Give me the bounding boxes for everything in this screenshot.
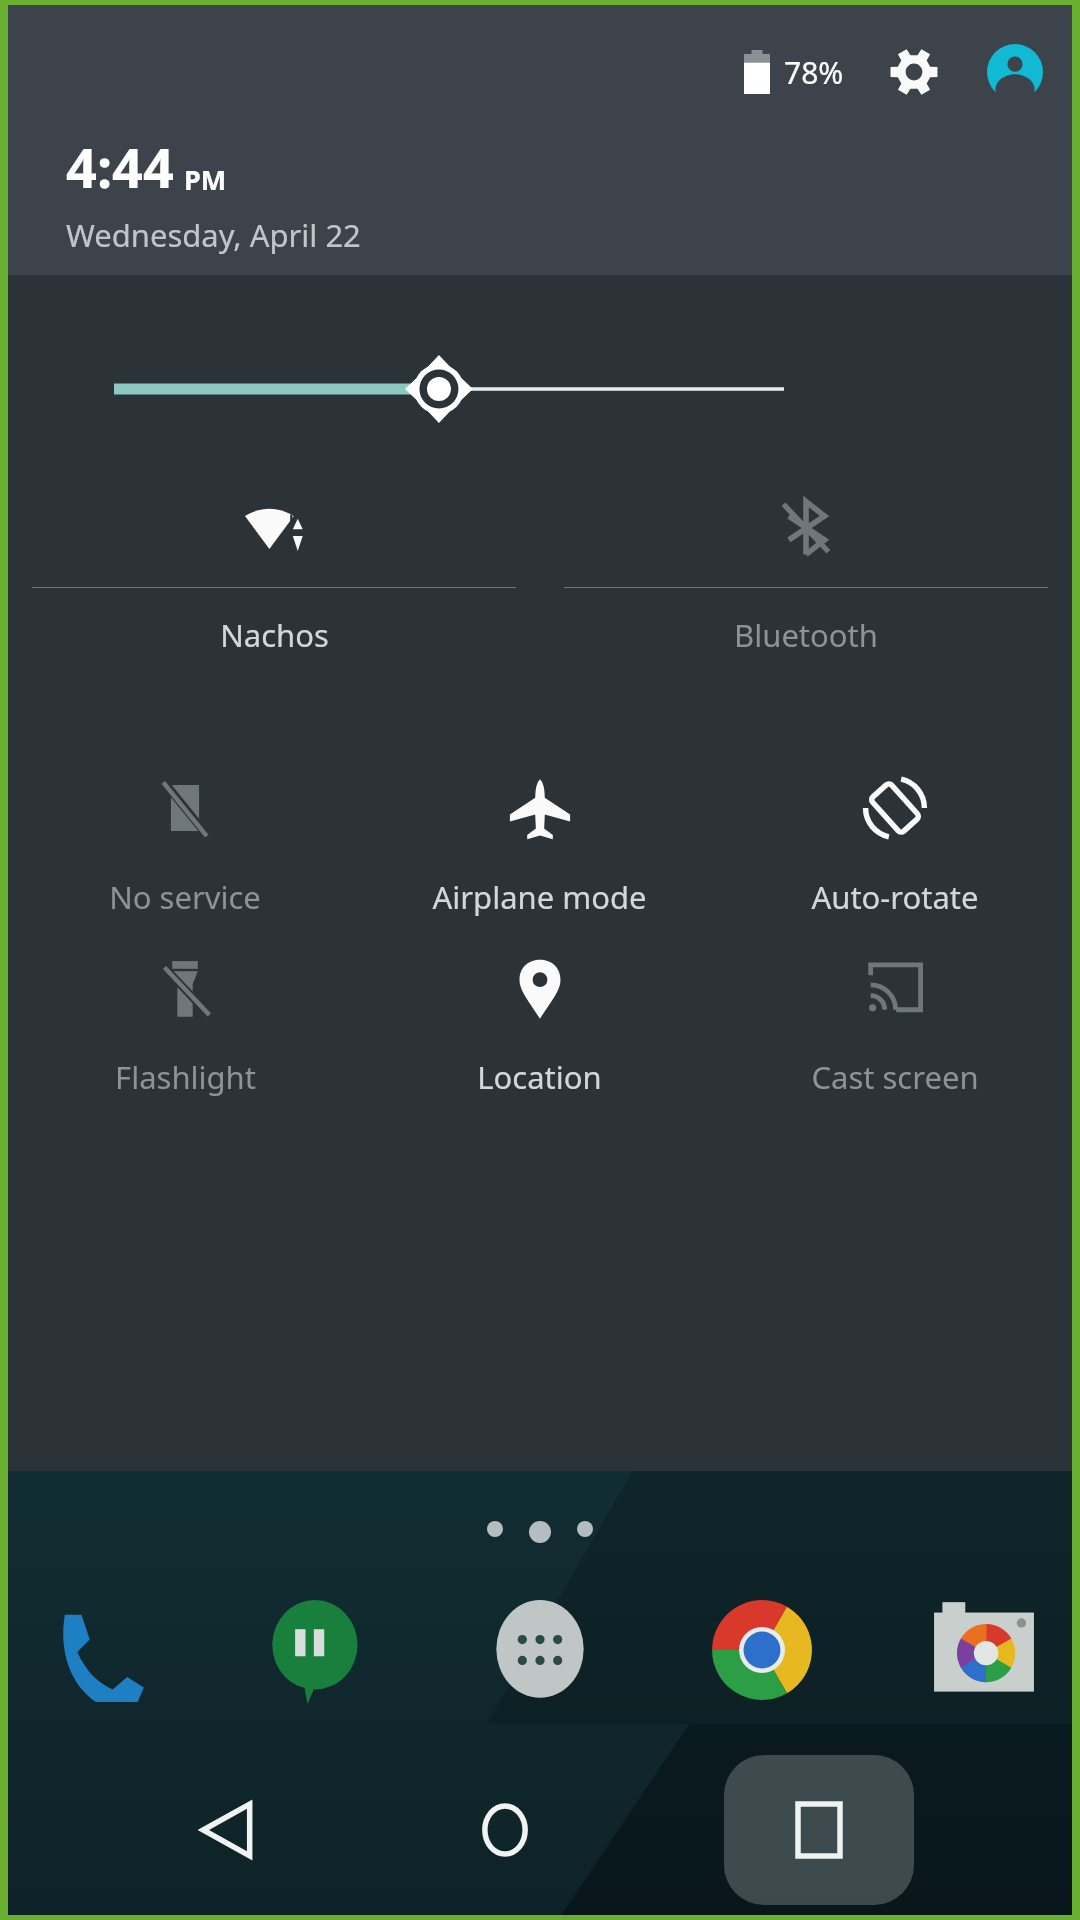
staticText: PM xyxy=(184,161,227,198)
staticText: Auto-rotate xyxy=(811,876,979,918)
button[interactable]: Recent apps xyxy=(724,1755,914,1905)
button[interactable]: All apps xyxy=(482,1592,598,1708)
button[interactable]: User profile xyxy=(986,43,1044,101)
button[interactable]: Cast screen xyxy=(717,942,1072,1098)
button[interactable] xyxy=(8,349,1072,429)
staticText: Nachos xyxy=(220,614,329,656)
staticText: Airplane mode xyxy=(432,876,647,918)
button[interactable]: Camera xyxy=(926,1592,1042,1708)
button[interactable]: No service xyxy=(8,762,362,918)
staticText: 78% xyxy=(784,52,844,93)
staticText: Location xyxy=(477,1056,602,1098)
button[interactable]: Location xyxy=(362,942,717,1098)
button[interactable]: Nachos xyxy=(8,489,540,656)
staticText: Bluetooth xyxy=(734,614,878,656)
staticText: Flashlight xyxy=(115,1056,256,1098)
button[interactable]: Chrome xyxy=(704,1592,820,1708)
button[interactable]: Back xyxy=(167,1770,287,1890)
button[interactable]: Auto-rotate xyxy=(717,762,1072,918)
button[interactable]: Airplane mode xyxy=(362,762,717,918)
button[interactable]: Hangouts xyxy=(260,1592,376,1708)
button[interactable]: Home xyxy=(445,1770,565,1890)
staticText: Wednesday, April 22 xyxy=(66,214,361,256)
staticText: Cast screen xyxy=(811,1056,979,1098)
button[interactable]: Settings xyxy=(886,44,942,100)
staticText: 4:44 xyxy=(66,130,174,204)
button[interactable]: Flashlight xyxy=(8,942,362,1098)
button[interactable]: Phone xyxy=(38,1592,154,1708)
staticText: No service xyxy=(109,876,261,918)
button[interactable]: Bluetooth xyxy=(540,489,1072,656)
